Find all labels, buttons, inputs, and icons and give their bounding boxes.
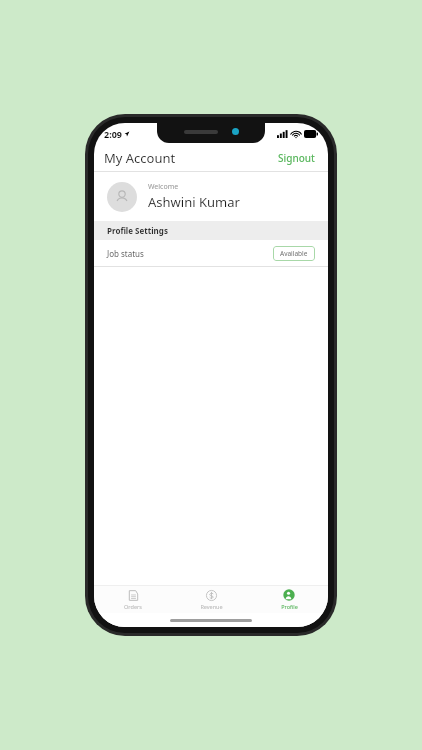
staticText: Signout [278, 151, 315, 165]
staticText: 2:09 [104, 128, 122, 140]
staticText: My Account [104, 149, 176, 167]
staticText: Job status [107, 248, 144, 259]
button[interactable]: Job status [94, 240, 328, 266]
button[interactable]: Revenue [172, 586, 250, 613]
staticText: Profile [281, 603, 298, 610]
other: Orders [128, 590, 139, 601]
button[interactable]: Available [273, 246, 315, 261]
staticText: Welcome [148, 182, 179, 192]
staticText: Revenue [200, 603, 223, 610]
staticText: Profile Settings [107, 225, 168, 236]
button[interactable]: Profile [250, 586, 328, 613]
button[interactable]: Orders [94, 586, 172, 613]
other: Revenue [206, 590, 217, 601]
staticText: Available [280, 249, 308, 258]
other: Profile [283, 589, 295, 601]
button[interactable]: Welcome [94, 172, 328, 221]
button[interactable]: Signout [275, 148, 318, 168]
staticText: Orders [124, 603, 142, 610]
staticText: Ashwini Kumar [148, 193, 240, 211]
